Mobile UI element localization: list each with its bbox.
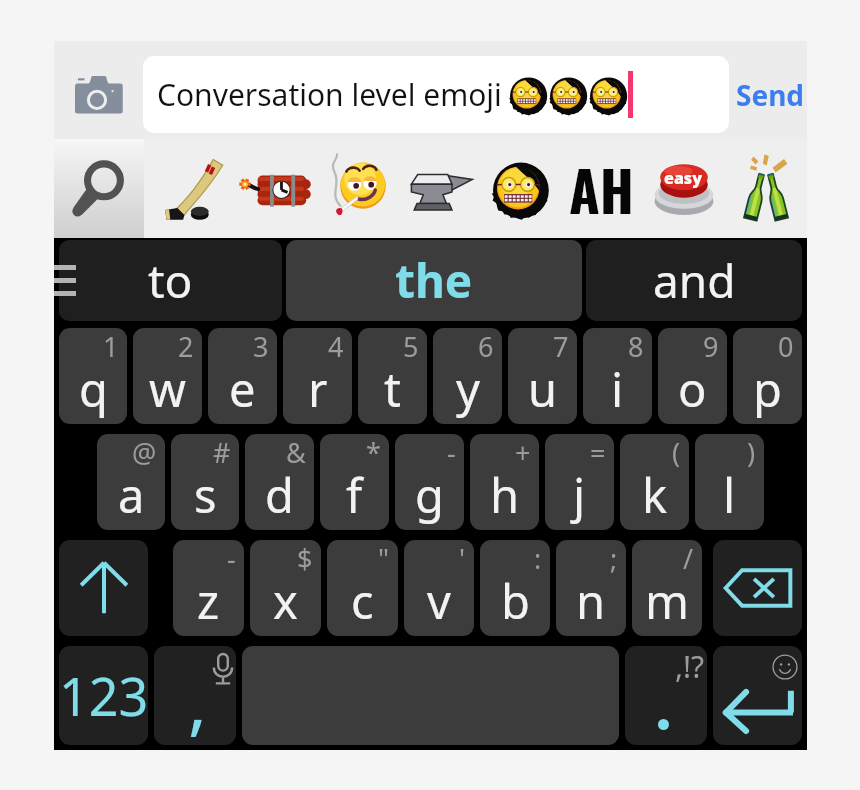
- button[interactable]: 8: [583, 328, 652, 424]
- staticText: ,: [188, 653, 207, 745]
- button[interactable]: =: [545, 434, 614, 530]
- staticText: *: [366, 434, 381, 471]
- button[interactable]: Space: [242, 646, 619, 745]
- button[interactable]: ;: [556, 540, 626, 636]
- staticText: 7: [553, 328, 569, 365]
- staticText: s: [194, 463, 217, 527]
- staticText: =: [590, 434, 606, 471]
- button[interactable]: /: [632, 540, 702, 636]
- staticText: #: [213, 434, 231, 471]
- staticText: o: [678, 357, 707, 421]
- button[interactable]: 4: [283, 328, 352, 424]
- staticText: h: [490, 463, 520, 527]
- staticText: b: [501, 569, 530, 633]
- staticText: f: [346, 463, 363, 527]
- staticText: 123: [59, 660, 148, 731]
- button[interactable]: 123: [59, 646, 148, 745]
- staticText: p: [753, 357, 782, 421]
- button[interactable]: Send: [734, 56, 807, 133]
- staticText: n: [576, 569, 606, 633]
- button[interactable]: (: [620, 434, 689, 530]
- button[interactable]: ,!?: [625, 646, 707, 745]
- button[interactable]: Search emoji: [54, 139, 144, 238]
- staticText: 6: [478, 328, 494, 365]
- button[interactable]: $: [250, 540, 321, 636]
- button[interactable]: ': [404, 540, 474, 636]
- staticText: 2: [178, 328, 194, 365]
- button[interactable]: 6: [433, 328, 502, 424]
- staticText: 4: [328, 328, 344, 365]
- button[interactable]: 0: [733, 328, 802, 424]
- staticText: $: [297, 540, 313, 577]
- button[interactable]: and: [586, 240, 802, 321]
- button[interactable]: ,: [154, 646, 236, 745]
- button[interactable]: Conversation level emoji: [143, 56, 729, 133]
- staticText: 9: [703, 328, 719, 365]
- button[interactable]: Enter: [713, 646, 802, 745]
- button[interactable]: +: [470, 434, 539, 530]
- button[interactable]: ): [695, 434, 764, 530]
- staticText: q: [79, 357, 108, 421]
- staticText: easy: [664, 167, 702, 189]
- staticText: +: [515, 434, 531, 471]
- staticText: to: [148, 249, 193, 312]
- staticText: r: [308, 357, 328, 421]
- button[interactable]: Camera: [72, 74, 126, 116]
- button[interactable]: 3: [208, 328, 277, 424]
- button[interactable]: 2: [133, 328, 202, 424]
- staticText: 5: [403, 328, 419, 365]
- staticText: Conversation level emoji: [157, 74, 502, 115]
- staticText: the: [395, 249, 473, 312]
- button[interactable]: Backspace: [713, 540, 802, 636]
- staticText: ,!?: [675, 646, 705, 687]
- staticText: j: [573, 463, 586, 527]
- staticText: z: [197, 569, 220, 633]
- staticText: v: [427, 569, 451, 633]
- staticText: w: [149, 357, 186, 421]
- staticText: c: [351, 569, 374, 633]
- button[interactable]: @: [97, 434, 165, 530]
- staticText: t: [384, 357, 401, 421]
- staticText: 8: [628, 328, 644, 365]
- staticText: a: [118, 463, 145, 527]
- staticText: &: [286, 434, 306, 471]
- button[interactable]: Shift: [59, 540, 148, 636]
- staticText: e: [229, 357, 256, 421]
- staticText: AH: [569, 147, 635, 230]
- staticText: 0: [778, 328, 794, 365]
- button[interactable]: 7: [508, 328, 577, 424]
- staticText: l: [723, 463, 736, 527]
- staticText: -: [447, 434, 456, 471]
- staticText: k: [642, 463, 668, 527]
- button[interactable]: 5: [358, 328, 427, 424]
- staticText: @: [132, 434, 157, 471]
- staticText: ': [459, 540, 466, 577]
- staticText: :: [534, 540, 542, 577]
- staticText: ": [378, 540, 390, 577]
- staticText: m: [645, 569, 689, 633]
- staticText: d: [265, 463, 294, 527]
- staticText: (: [672, 434, 681, 471]
- staticText: /: [683, 540, 694, 577]
- staticText: x: [273, 569, 298, 633]
- staticText: u: [528, 357, 558, 421]
- button[interactable]: *: [320, 434, 389, 530]
- staticText: g: [415, 463, 444, 527]
- staticText: 3: [253, 328, 269, 365]
- button[interactable]: to: [59, 240, 282, 321]
- staticText: 1: [103, 328, 119, 365]
- staticText: i: [611, 357, 624, 421]
- staticText: ;: [610, 540, 618, 577]
- button[interactable]: 9: [658, 328, 727, 424]
- button[interactable]: :: [480, 540, 550, 636]
- staticText: ): [747, 434, 756, 471]
- button[interactable]: -: [173, 540, 244, 636]
- button[interactable]: 1: [59, 328, 127, 424]
- button[interactable]: the: [286, 240, 582, 321]
- staticText: Send: [736, 76, 805, 114]
- button[interactable]: ": [327, 540, 398, 636]
- button[interactable]: &: [245, 434, 314, 530]
- staticText: -: [227, 540, 236, 577]
- button[interactable]: -: [395, 434, 464, 530]
- button[interactable]: #: [171, 434, 239, 530]
